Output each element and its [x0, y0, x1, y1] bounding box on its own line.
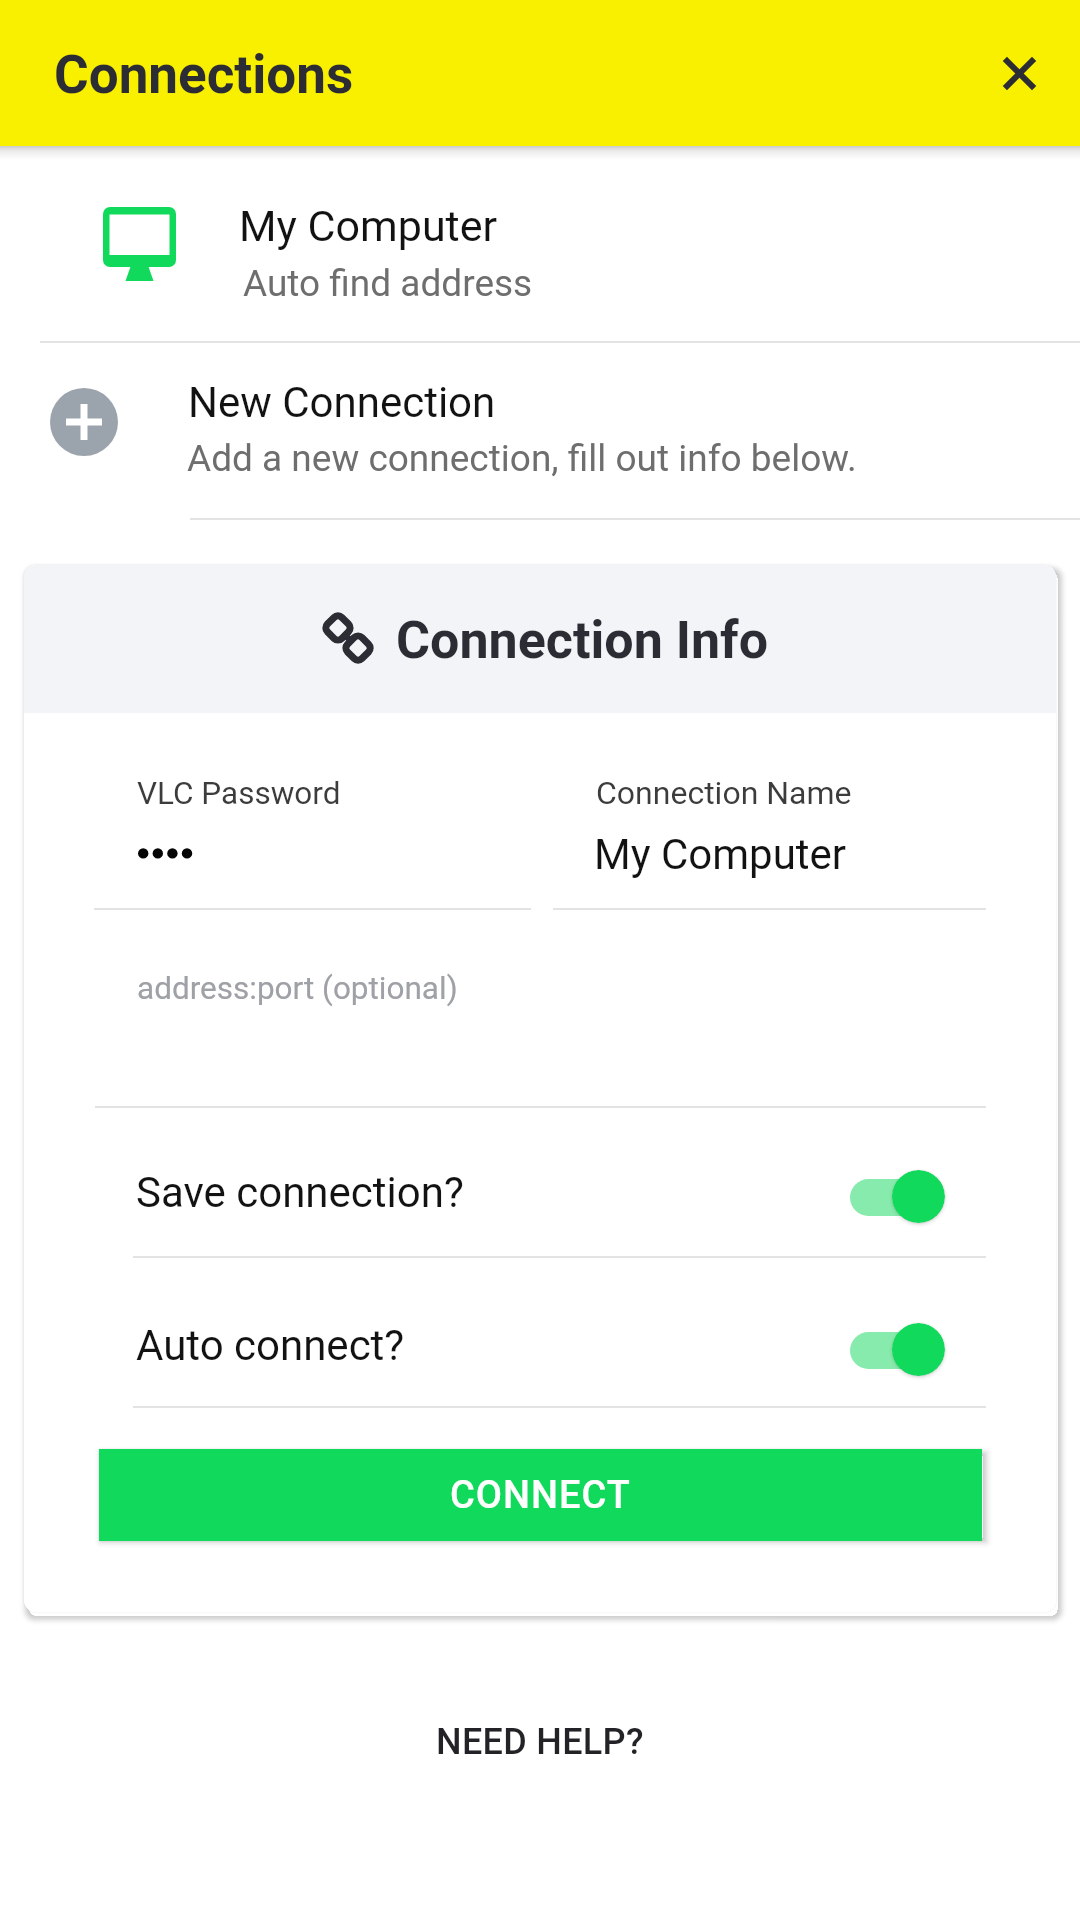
staticText: Connections	[54, 44, 354, 106]
staticText: New Connection	[188, 378, 496, 427]
staticText: NEED HELP?	[436, 1721, 644, 1763]
staticText: Auto connect?	[136, 1321, 405, 1370]
button[interactable]: My Computer	[0, 146, 1080, 341]
button[interactable]: CONNECT	[99, 1449, 982, 1541]
staticText: CONNECT	[450, 1473, 631, 1518]
staticText: Add a new connection, fill out info belo…	[187, 437, 857, 480]
staticText: VLC Password	[137, 775, 341, 812]
staticText: Connection Name	[596, 774, 852, 812]
button[interactable]: Close	[971, 25, 1067, 121]
staticText: address:port (optional)	[137, 970, 458, 1007]
button[interactable]: Auto connect?	[24, 1256, 1056, 1406]
button[interactable]: New Connection	[0, 343, 1080, 518]
staticText: Auto find address	[243, 262, 533, 305]
staticText: Connection Info	[396, 610, 769, 671]
button[interactable]: NEED HELP?	[400, 1692, 680, 1792]
staticText: My Computer	[239, 201, 498, 251]
button[interactable]: Save connection?	[24, 1106, 1056, 1256]
staticText: Save connection?	[136, 1168, 464, 1217]
staticText: My Computer	[594, 830, 847, 879]
